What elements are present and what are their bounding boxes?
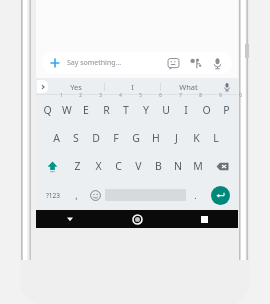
button[interactable]: M [188,152,208,180]
button[interactable]: Y [136,95,156,124]
button[interactable]: Recent apps [171,210,238,228]
button[interactable]: Voice input [216,78,238,95]
staticText: H [152,131,160,145]
staticText: T [123,103,129,117]
button[interactable]: I [176,95,196,124]
staticText: ?123 [46,191,60,200]
button[interactable]: What [161,78,216,95]
button[interactable]: Add attachment [42,52,232,74]
staticText: R [103,103,110,117]
staticText: X [95,159,102,173]
staticText: K [193,131,200,145]
staticText: S [73,131,79,145]
staticText: I [131,82,134,92]
staticText: , [75,189,78,201]
button[interactable]: G [126,124,146,152]
button[interactable]: X [88,152,108,180]
button[interactable]: E [76,95,96,124]
staticText: J [175,131,178,145]
button[interactable]: J [166,124,186,152]
button[interactable]: Home [104,210,171,228]
staticText: 7 [179,92,182,98]
staticText: Yes [70,82,82,92]
staticText: Q [43,103,52,117]
staticText: B [155,159,162,173]
staticText: Say something... [67,58,167,68]
button[interactable]: K [186,124,206,152]
button[interactable]: A [47,124,66,152]
staticText: Z [74,159,81,173]
button[interactable]: , [67,180,86,210]
button[interactable]: W [57,95,76,124]
staticText: . [194,189,197,201]
button[interactable]: L [206,124,226,152]
staticText: A [53,131,60,145]
staticText: I [184,103,188,117]
button[interactable]: T [116,95,136,124]
button[interactable]: O [196,95,216,124]
button[interactable]: Enter [211,186,230,205]
staticText: U [162,103,170,117]
button[interactable]: . [186,180,205,210]
staticText: 4 [119,92,122,98]
button[interactable]: U [156,95,176,124]
button[interactable]: Emoji [86,180,105,210]
staticText: P [223,103,230,117]
button[interactable]: R [96,95,116,124]
staticText: 1 [60,92,63,98]
staticText: What [179,82,198,92]
button[interactable]: D [86,124,106,152]
staticText: W [62,103,72,117]
button[interactable]: B [148,152,168,180]
staticText: L [213,131,219,145]
staticText: 9 [219,92,222,98]
button[interactable]: Z [67,152,88,180]
button[interactable]: Shift [38,152,67,180]
staticText: M [193,159,203,173]
button[interactable]: V [128,152,148,180]
staticText: O [202,103,211,117]
button[interactable]: C [108,152,128,180]
button[interactable]: Q [38,95,57,124]
button[interactable]: ?123 [38,180,67,210]
staticText: 3 [99,92,102,98]
staticText: 5 [139,92,142,98]
staticText: C [115,159,122,173]
button[interactable]: Back [36,210,104,228]
staticText: F [113,131,119,145]
button[interactable]: P [216,95,236,124]
button[interactable]: S [66,124,86,152]
staticText: G [132,131,140,145]
button[interactable]: Expand suggestions [37,80,48,93]
staticText: D [92,131,100,145]
staticText: Y [143,103,149,117]
button[interactable]: I [105,78,160,95]
button[interactable]: Yes [48,78,104,95]
staticText: V [135,159,142,173]
button[interactable]: Backspace [208,152,236,180]
button[interactable]: Add attachment [48,56,62,70]
staticText: 8 [199,92,202,98]
staticText: N [174,159,182,173]
staticText: 6 [159,92,162,98]
staticText: 0 [239,92,242,98]
staticText: 2 [79,92,82,98]
button[interactable]: H [146,124,166,152]
button[interactable]: F [106,124,126,152]
staticText: E [83,103,89,117]
button[interactable]: N [168,152,188,180]
